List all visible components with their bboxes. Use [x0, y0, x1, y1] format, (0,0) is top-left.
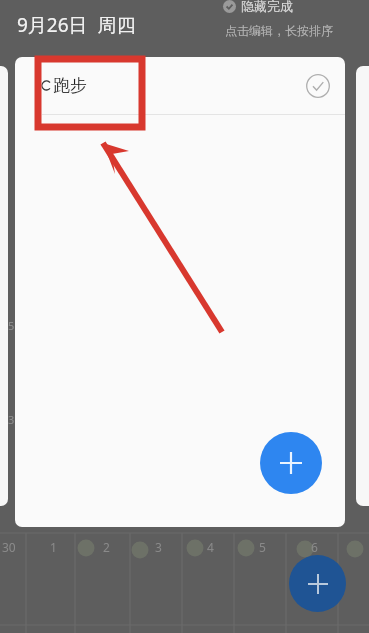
staticText: 点击编辑，长按排序	[225, 23, 333, 38]
staticText: 隐藏完成	[241, 0, 293, 14]
staticText: 跑步	[53, 75, 87, 96]
staticText: 4	[207, 539, 214, 555]
staticText: 5	[259, 539, 266, 555]
button[interactable]: Add event	[289, 555, 346, 612]
button[interactable]	[356, 66, 369, 506]
button[interactable]: 隐藏完成	[221, 0, 295, 16]
staticText: 3	[155, 539, 162, 555]
button[interactable]: 跑步	[15, 57, 345, 114]
staticText: 2	[103, 539, 110, 555]
staticText: 1	[50, 539, 57, 555]
staticText: 9月26日 周四	[17, 12, 136, 38]
staticText: 5	[8, 318, 15, 333]
button[interactable]: Mark complete	[303, 71, 333, 101]
button[interactable]: Add task	[260, 432, 322, 494]
staticText: 30	[2, 539, 16, 555]
staticText: 6	[311, 539, 318, 555]
button[interactable]	[0, 66, 8, 506]
staticText: 3	[8, 412, 15, 427]
